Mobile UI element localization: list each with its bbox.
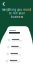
button[interactable]: Back bbox=[1, 1, 6, 7]
staticText: Everything you need to run your business bbox=[2, 8, 31, 19]
